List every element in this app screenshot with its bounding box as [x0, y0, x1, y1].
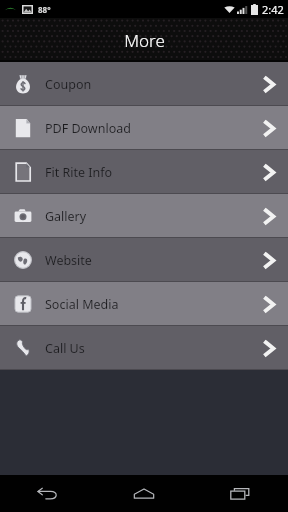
- button[interactable]: Social Media: [0, 282, 288, 326]
- button[interactable]: Call Us: [0, 326, 288, 370]
- button[interactable]: Recent apps: [192, 475, 288, 512]
- button[interactable]: PDF Download: [0, 106, 288, 150]
- button[interactable]: Fit Rite Info: [0, 150, 288, 194]
- button[interactable]: Back: [0, 475, 96, 512]
- button[interactable]: Gallery: [0, 194, 288, 238]
- staticText: Call Us: [45, 340, 263, 357]
- staticText: Coupon: [45, 76, 263, 93]
- staticText: 2:42: [262, 2, 284, 17]
- button[interactable]: Home: [96, 475, 192, 512]
- staticText: 88°: [38, 4, 51, 15]
- staticText: More: [124, 29, 165, 52]
- button[interactable]: Coupon: [0, 62, 288, 106]
- staticText: PDF Download: [45, 120, 263, 137]
- staticText: Social Media: [45, 296, 263, 313]
- staticText: Fit Rite Info: [45, 164, 263, 181]
- staticText: Website: [45, 252, 263, 269]
- staticText: Gallery: [45, 208, 263, 225]
- button[interactable]: Website: [0, 238, 288, 282]
